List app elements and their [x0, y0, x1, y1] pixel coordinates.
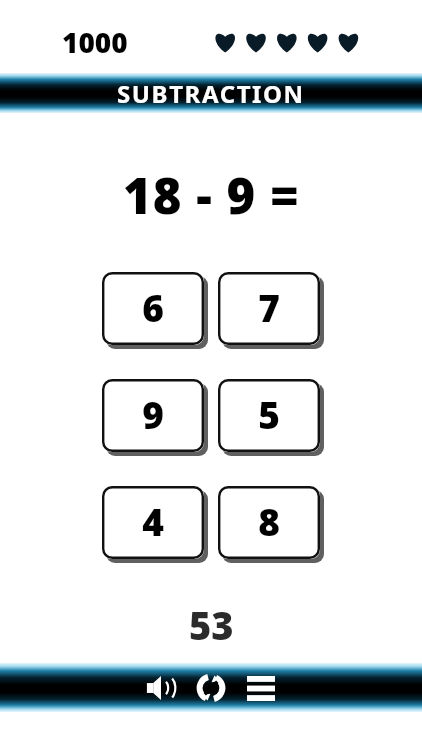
staticText: 53 — [189, 599, 234, 651]
staticText: SUBTRACTION — [117, 77, 305, 110]
button[interactable]: 5 — [217, 378, 322, 454]
staticText: 9 — [142, 389, 164, 439]
staticText: 4 — [142, 496, 164, 546]
button[interactable]: Refresh — [188, 665, 234, 711]
button[interactable]: 4 — [101, 485, 206, 561]
staticText: 8 — [258, 496, 280, 546]
button[interactable]: 8 — [217, 485, 322, 561]
staticText: 6 — [142, 282, 164, 332]
staticText: 18 - 9 = — [123, 162, 300, 229]
staticText: 5 — [258, 389, 280, 439]
button[interactable]: Sound — [138, 665, 184, 711]
button[interactable]: 7 — [217, 271, 322, 347]
button[interactable]: 6 — [101, 271, 206, 347]
button[interactable]: Menu — [238, 665, 284, 711]
button[interactable]: 9 — [101, 378, 206, 454]
staticText: 1000 — [62, 23, 128, 61]
staticText: 7 — [258, 282, 280, 332]
